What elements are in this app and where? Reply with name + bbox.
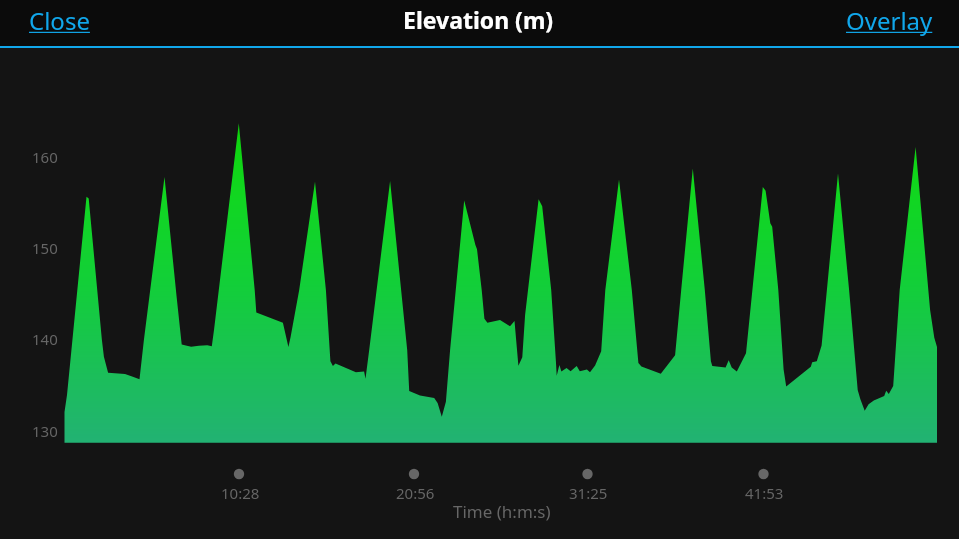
- staticText: 41:53: [745, 483, 784, 503]
- staticText: 31:25: [569, 483, 608, 503]
- staticText: Overlay: [846, 4, 933, 37]
- button[interactable]: Overlay: [832, 0, 947, 46]
- button[interactable]: Close: [15, 0, 104, 46]
- staticText: Elevation (m): [403, 4, 554, 35]
- staticText: 20:56: [396, 483, 435, 503]
- staticText: 160: [32, 147, 58, 167]
- staticText: 140: [32, 329, 58, 349]
- staticText: Close: [29, 4, 90, 37]
- staticText: 150: [32, 238, 58, 258]
- staticText: 10:28: [221, 483, 260, 503]
- staticText: Time (h:m:s): [453, 500, 551, 523]
- staticText: 130: [32, 421, 58, 441]
